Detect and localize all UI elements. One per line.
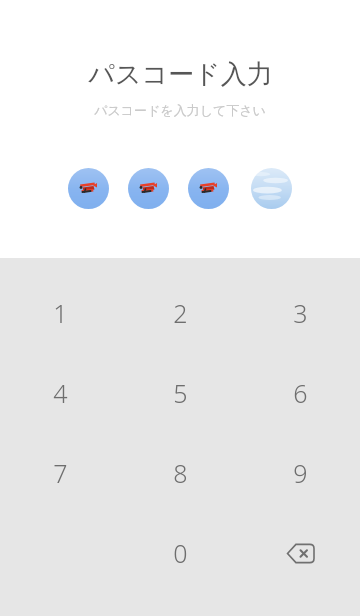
- button[interactable]: 8: [120, 443, 240, 503]
- button[interactable]: 6: [240, 363, 360, 423]
- button[interactable]: 9: [240, 443, 360, 503]
- staticText: パスコード入力: [88, 58, 273, 91]
- button[interactable]: 5: [120, 363, 240, 423]
- staticText: 0: [173, 536, 188, 570]
- staticText: 9: [293, 456, 308, 490]
- staticText: パスコードを入力して下さい: [94, 102, 266, 118]
- button[interactable]: 7: [0, 443, 120, 503]
- button[interactable]: 0: [120, 523, 240, 583]
- staticText: 6: [293, 376, 308, 410]
- staticText: 7: [53, 456, 68, 490]
- button[interactable]: 3: [240, 283, 360, 343]
- staticText: 2: [173, 296, 188, 330]
- staticText: 5: [173, 376, 188, 410]
- staticText: 8: [173, 456, 188, 490]
- button[interactable]: 1: [0, 283, 120, 343]
- button[interactable]: 4: [0, 363, 120, 423]
- staticText: 4: [53, 376, 68, 410]
- button[interactable]: 2: [120, 283, 240, 343]
- button[interactable]: Delete: [240, 523, 360, 583]
- staticText: 1: [53, 296, 68, 330]
- staticText: 3: [293, 296, 308, 330]
